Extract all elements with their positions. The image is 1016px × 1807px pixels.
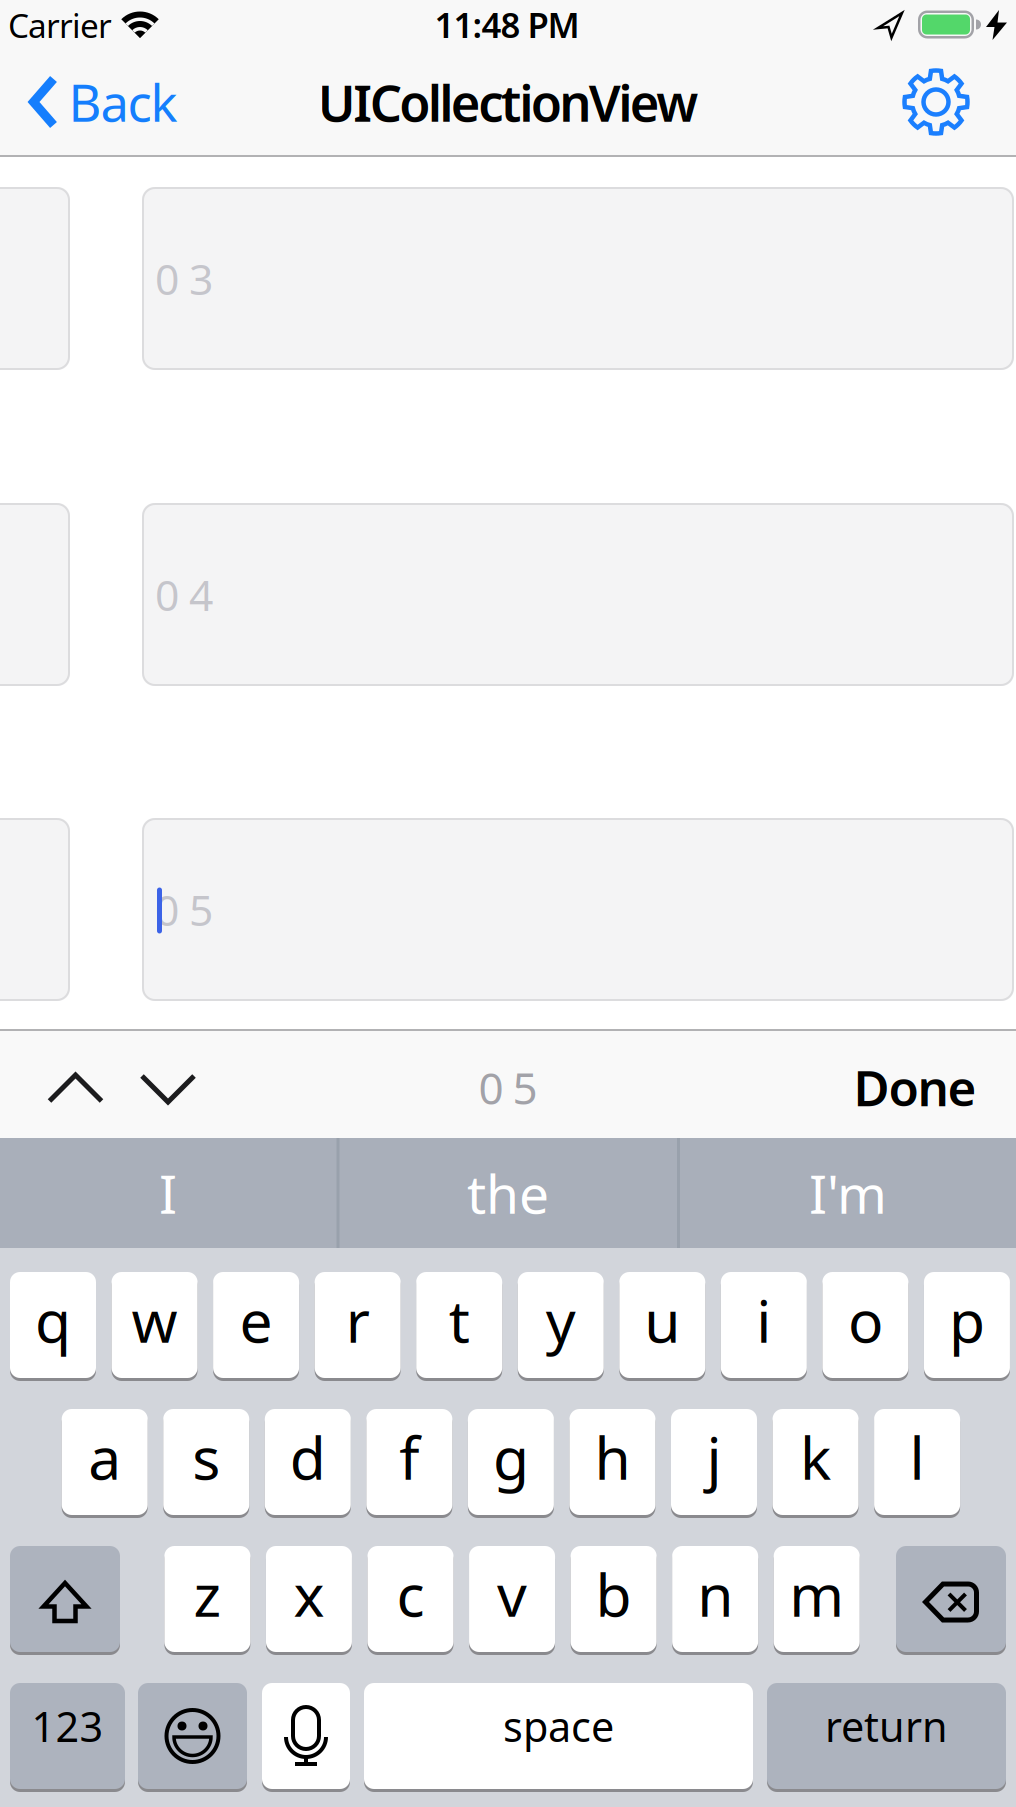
staticText: t	[449, 1281, 470, 1359]
staticText: 0 4	[155, 566, 213, 623]
button[interactable]: v	[469, 1544, 555, 1653]
staticText: space	[503, 1699, 614, 1753]
staticText: s	[192, 1418, 220, 1496]
button[interactable]: return	[767, 1681, 1006, 1790]
staticText: 0 5	[155, 881, 213, 938]
button[interactable]: t	[416, 1270, 502, 1379]
button[interactable]: p	[924, 1270, 1010, 1379]
staticText: l	[910, 1418, 925, 1496]
button[interactable]: g	[468, 1407, 554, 1516]
staticText: k	[800, 1418, 831, 1496]
button[interactable]: y	[518, 1270, 604, 1379]
button[interactable]: x	[266, 1544, 352, 1653]
button[interactable]: 123	[10, 1681, 125, 1790]
button[interactable]: r	[315, 1270, 401, 1379]
staticText: Carrier	[8, 3, 112, 47]
staticText: d	[290, 1418, 326, 1496]
button[interactable]	[896, 1544, 1006, 1653]
button[interactable]: s	[163, 1407, 249, 1516]
staticText: 123	[31, 1699, 103, 1753]
button[interactable]: d	[265, 1407, 351, 1516]
staticText: v	[497, 1555, 527, 1633]
staticText: n	[697, 1555, 733, 1633]
button[interactable]: l	[874, 1407, 960, 1516]
staticText: x	[293, 1555, 324, 1633]
button[interactable]	[47, 1073, 103, 1103]
staticText: return	[825, 1699, 948, 1753]
button[interactable]	[138, 1681, 247, 1790]
button[interactable]: a	[62, 1407, 148, 1516]
button[interactable]: 0 5	[142, 818, 1014, 1001]
staticText: u	[644, 1281, 680, 1359]
button[interactable]: w	[112, 1270, 198, 1379]
button[interactable]: m	[774, 1544, 860, 1653]
staticText: h	[594, 1418, 630, 1496]
staticText: b	[596, 1555, 632, 1633]
staticText: o	[848, 1281, 883, 1359]
staticText: 0 3	[155, 250, 213, 307]
button[interactable]: e	[213, 1270, 299, 1379]
staticText: UICollectionView	[318, 68, 698, 136]
staticText: 11:48 PM	[434, 1, 579, 47]
button[interactable]: c	[367, 1544, 453, 1653]
button[interactable]: i	[721, 1270, 807, 1379]
button[interactable]	[10, 1544, 120, 1653]
button[interactable]: the	[343, 1138, 673, 1248]
button[interactable]: u	[619, 1270, 705, 1379]
staticText: e	[240, 1281, 273, 1359]
staticText: q	[35, 1281, 71, 1359]
staticText: m	[789, 1555, 844, 1633]
staticText: j	[706, 1418, 721, 1496]
staticText: w	[132, 1281, 178, 1359]
staticText: I	[159, 1158, 177, 1228]
staticText: 0 5	[478, 1058, 537, 1117]
staticText: c	[396, 1555, 424, 1633]
button[interactable]	[0, 503, 70, 686]
button[interactable]	[0, 818, 70, 1001]
button[interactable]: b	[571, 1544, 657, 1653]
staticText: I'm	[809, 1158, 887, 1228]
button[interactable]: f	[366, 1407, 452, 1516]
staticText: r	[346, 1281, 370, 1359]
button[interactable]: I'm	[683, 1138, 1013, 1248]
button[interactable]: 0 4	[142, 503, 1014, 686]
button[interactable]: k	[773, 1407, 859, 1516]
button[interactable]: Back	[30, 68, 177, 136]
button[interactable]: 0 3	[142, 187, 1014, 370]
staticText: i	[756, 1281, 771, 1359]
button[interactable]: o	[822, 1270, 908, 1379]
button[interactable]: z	[164, 1544, 250, 1653]
button[interactable]: space	[364, 1681, 753, 1790]
staticText: f	[399, 1418, 419, 1496]
button[interactable]	[140, 1074, 196, 1104]
staticText: Done	[853, 1054, 976, 1120]
button[interactable]	[903, 69, 969, 135]
staticText: a	[88, 1418, 121, 1496]
staticText: y	[546, 1281, 576, 1359]
button[interactable]: q	[10, 1270, 96, 1379]
staticText: z	[193, 1555, 221, 1633]
staticText: Back	[68, 68, 177, 136]
staticText: the	[467, 1158, 549, 1228]
button[interactable]: j	[671, 1407, 757, 1516]
button[interactable]	[0, 187, 70, 370]
staticText: g	[493, 1418, 529, 1496]
button[interactable]: Done	[853, 1054, 976, 1120]
button[interactable]: I	[3, 1138, 333, 1248]
button[interactable]: h	[569, 1407, 655, 1516]
staticText: p	[949, 1281, 985, 1359]
button[interactable]	[262, 1681, 350, 1790]
button[interactable]: n	[672, 1544, 758, 1653]
